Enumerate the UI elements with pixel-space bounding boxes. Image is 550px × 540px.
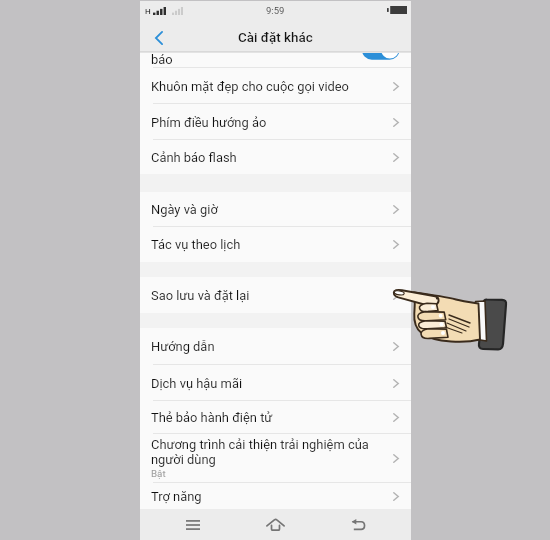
staticText: Khuôn mặt đẹp cho cuộc gọi video <box>151 79 349 94</box>
button[interactable]: Phím điều hướng ảo <box>140 104 411 140</box>
button[interactable]: Chương trình cải thiện trải nghiệm của <box>140 434 411 483</box>
staticText: Chương trình cải thiện trải nghiệm của <box>151 437 369 452</box>
staticText: Dịch vụ hậu mãi <box>151 376 243 391</box>
button[interactable]: Trợ năng <box>140 483 411 509</box>
staticText: Thẻ bảo hành điện tử <box>151 410 273 425</box>
button[interactable]: Back <box>140 22 178 53</box>
button[interactable]: Cảnh báo flash <box>140 140 411 174</box>
staticText: Tác vụ theo lịch <box>151 237 241 252</box>
button[interactable]: Khuôn mặt đẹp cho cuộc gọi video <box>140 68 411 104</box>
button[interactable]: Home <box>255 509 295 540</box>
staticText: Phím điều hướng ảo <box>151 115 267 130</box>
staticText: Hướng dẫn <box>151 339 215 354</box>
staticText: H <box>145 7 151 16</box>
button[interactable]: Back <box>338 509 378 540</box>
staticText: Sao lưu và đặt lại <box>151 288 250 303</box>
button[interactable]: Hướng dẫn <box>140 328 411 365</box>
staticText: báo <box>151 53 173 67</box>
staticText: người dùng <box>151 452 216 467</box>
button[interactable]: Dịch vụ hậu mãi <box>140 365 411 401</box>
button[interactable]: báo <box>140 53 411 68</box>
button[interactable]: Ngày và giờ <box>140 192 411 227</box>
staticText: Cảnh báo flash <box>151 150 237 165</box>
staticText: 9:59 <box>266 5 285 16</box>
staticText: Ngày và giờ <box>151 202 218 217</box>
staticText: Cài đặt khác <box>238 30 313 46</box>
staticText: Bật <box>151 468 166 479</box>
button[interactable]: Tác vụ theo lịch <box>140 227 411 262</box>
button[interactable]: Recent apps <box>173 509 213 540</box>
button[interactable]: Thẻ bảo hành điện tử <box>140 401 411 434</box>
staticText: Trợ năng <box>151 489 202 504</box>
button[interactable]: Sao lưu và đặt lại <box>140 277 411 313</box>
